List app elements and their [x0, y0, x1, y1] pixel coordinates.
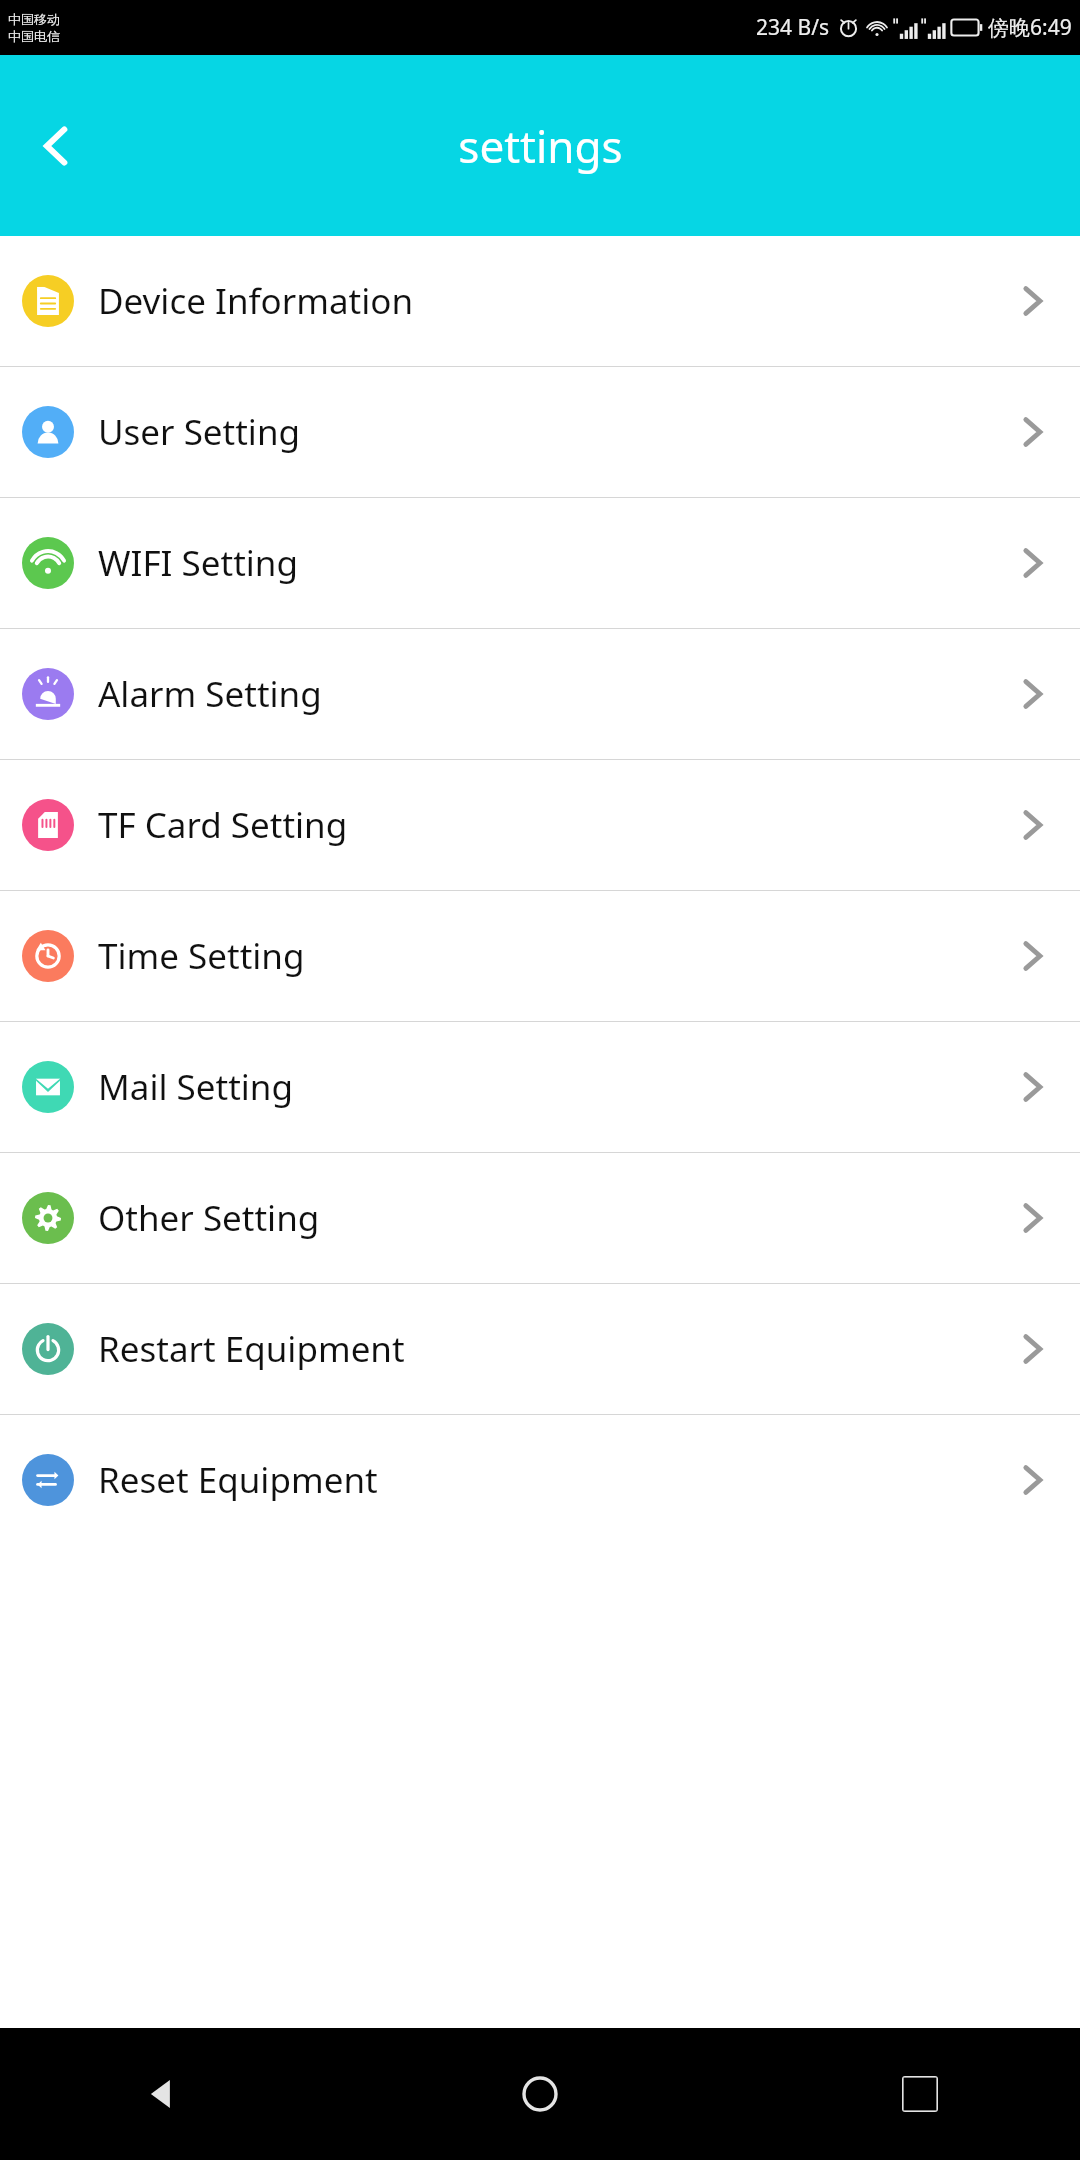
- button[interactable]: Time Setting: [0, 891, 1080, 1021]
- button[interactable]: Recent apps: [880, 2054, 960, 2134]
- staticText: Other Setting: [98, 1194, 320, 1242]
- button[interactable]: Back: [120, 2054, 200, 2134]
- button[interactable]: Alarm Setting: [0, 629, 1080, 759]
- button[interactable]: Back: [18, 107, 96, 185]
- staticText: 中国移动: [8, 11, 60, 27]
- staticText: 234 B/s: [756, 13, 830, 42]
- button[interactable]: User Setting: [0, 367, 1080, 497]
- staticText: Reset Equipment: [98, 1456, 378, 1504]
- staticText: User Setting: [98, 408, 301, 456]
- staticText: Restart Equipment: [98, 1325, 405, 1373]
- staticText: TF Card Setting: [98, 801, 348, 849]
- button[interactable]: Restart Equipment: [0, 1284, 1080, 1414]
- button[interactable]: WIFI Setting: [0, 498, 1080, 628]
- staticText: WIFI Setting: [98, 539, 298, 587]
- button[interactable]: TF Card Setting: [0, 760, 1080, 890]
- staticText: Alarm Setting: [98, 670, 322, 718]
- staticText: Mail Setting: [98, 1063, 293, 1111]
- button[interactable]: Reset Equipment: [0, 1415, 1080, 1545]
- button[interactable]: Other Setting: [0, 1153, 1080, 1283]
- staticText: Device Information: [98, 277, 414, 325]
- staticText: settings: [458, 116, 623, 176]
- staticText: Time Setting: [98, 932, 305, 980]
- staticText: 傍晚6:49: [988, 13, 1072, 42]
- button[interactable]: Home: [500, 2054, 580, 2134]
- staticText: 中国电信: [8, 28, 60, 44]
- button[interactable]: Mail Setting: [0, 1022, 1080, 1152]
- button[interactable]: Device Information: [0, 236, 1080, 366]
